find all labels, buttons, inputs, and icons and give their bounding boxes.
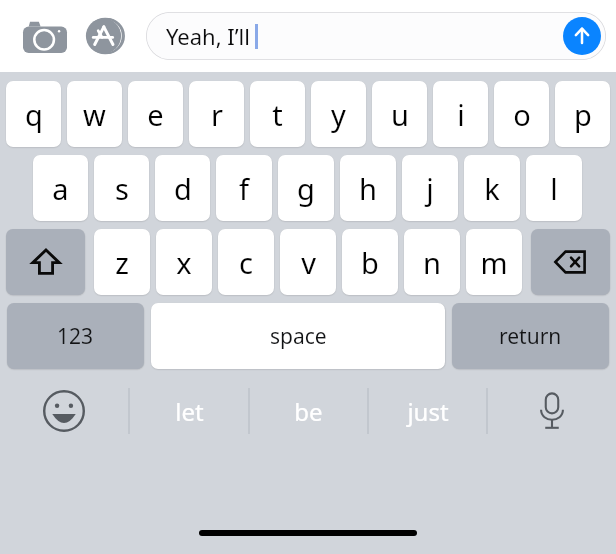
staticText: c [239, 243, 253, 282]
staticText: be [294, 395, 323, 428]
button[interactable]: y [311, 81, 366, 147]
button[interactable]: x [156, 229, 212, 295]
staticText: v [301, 243, 316, 282]
button[interactable]: e [128, 81, 183, 147]
staticText: b [361, 243, 379, 282]
button[interactable]: k [464, 155, 520, 221]
staticText: k [484, 169, 500, 208]
staticText: let [175, 395, 204, 428]
button[interactable]: just [369, 379, 486, 443]
button[interactable]: let [130, 379, 248, 443]
button[interactable]: m [466, 229, 522, 295]
button[interactable]: g [278, 155, 334, 221]
staticText: a [52, 169, 69, 208]
staticText: r [211, 95, 223, 134]
staticText: z [115, 243, 129, 282]
button[interactable]: r [189, 81, 244, 147]
button[interactable]: 123 [7, 303, 144, 369]
button[interactable]: Delete [531, 229, 610, 295]
button[interactable]: p [555, 81, 610, 147]
button[interactable]: space [151, 303, 445, 369]
button[interactable]: f [216, 155, 272, 221]
staticText: t [272, 95, 283, 134]
staticText: p [574, 95, 592, 134]
button[interactable]: z [94, 229, 150, 295]
staticText: i [457, 95, 465, 134]
staticText: just [407, 395, 449, 428]
button[interactable]: n [404, 229, 460, 295]
button[interactable]: Yeah, I’ll [146, 12, 606, 60]
button[interactable]: a [33, 155, 88, 221]
staticText: n [423, 243, 441, 282]
staticText: return [499, 322, 562, 351]
staticText: w [83, 95, 106, 134]
staticText: e [147, 95, 164, 134]
staticText: u [391, 95, 409, 134]
staticText: 123 [57, 322, 94, 351]
staticText: q [25, 95, 43, 134]
button[interactable]: i [433, 81, 488, 147]
button[interactable]: Emoji [0, 379, 128, 443]
button[interactable]: h [340, 155, 396, 221]
staticText: y [331, 95, 346, 134]
staticText: space [270, 322, 327, 351]
button[interactable]: App Store [84, 13, 130, 59]
button[interactable]: t [250, 81, 305, 147]
staticText: g [297, 169, 315, 208]
staticText: j [426, 169, 434, 208]
button[interactable]: Camera [22, 13, 68, 59]
button[interactable]: c [218, 229, 274, 295]
button[interactable]: Dictation [488, 379, 616, 443]
button[interactable]: j [402, 155, 458, 221]
button[interactable]: u [372, 81, 427, 147]
staticText: Yeah, I’ll [166, 21, 250, 51]
staticText: d [174, 169, 192, 208]
button[interactable]: q [6, 81, 61, 147]
staticText: f [239, 169, 249, 208]
staticText: x [176, 243, 192, 282]
button[interactable]: w [67, 81, 122, 147]
button[interactable]: s [94, 155, 149, 221]
button[interactable]: o [494, 81, 549, 147]
button[interactable]: Send [563, 17, 601, 55]
button[interactable]: b [342, 229, 398, 295]
staticText: s [115, 169, 129, 208]
staticText: h [359, 169, 377, 208]
button[interactable]: l [526, 155, 582, 221]
button[interactable]: v [280, 229, 336, 295]
staticText: m [480, 243, 508, 282]
button[interactable]: d [155, 155, 210, 221]
staticText: l [550, 169, 558, 208]
button[interactable]: Shift [6, 229, 85, 295]
button[interactable]: be [250, 379, 367, 443]
button[interactable]: return [452, 303, 609, 369]
staticText: o [513, 95, 531, 134]
